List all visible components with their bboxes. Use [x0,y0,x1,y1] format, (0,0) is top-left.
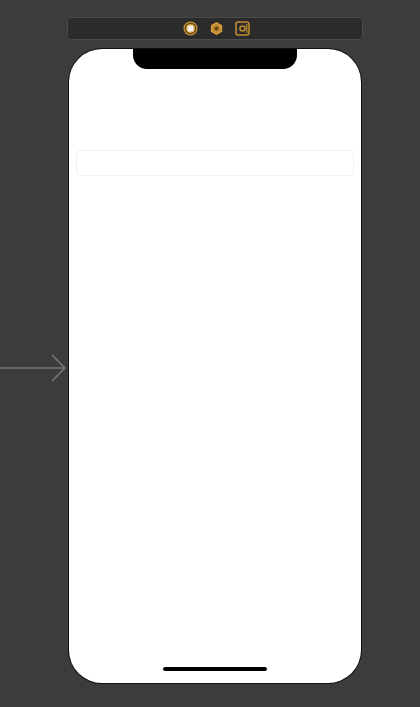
button[interactable]: Stop [183,21,198,36]
button[interactable]: Screenshot [235,21,250,36]
button[interactable]: Settings [209,21,224,36]
button[interactable] [76,150,354,176]
